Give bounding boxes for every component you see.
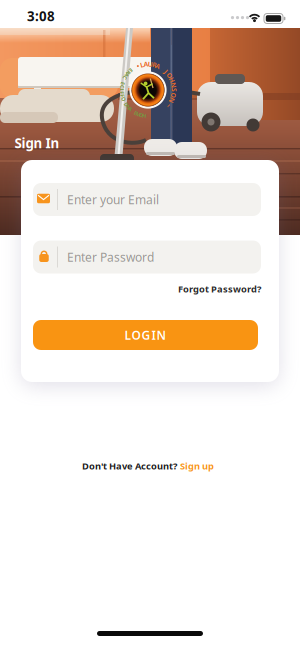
staticText: Enter your Email	[67, 191, 159, 207]
staticText: A	[144, 60, 149, 68]
staticText: Sign In	[14, 134, 59, 152]
staticText: ~	[166, 102, 170, 110]
staticText: M	[136, 111, 141, 118]
staticText: Don't Have Account?	[82, 460, 177, 472]
staticText: O	[171, 91, 176, 100]
staticText: U	[148, 60, 153, 69]
staticText: N	[171, 80, 176, 89]
button[interactable]: Forgot Password?	[33, 283, 261, 295]
staticText: E	[121, 80, 124, 87]
staticText: C	[124, 74, 127, 81]
staticText	[123, 77, 124, 84]
staticText: L	[140, 60, 144, 69]
staticText: N	[169, 96, 174, 105]
staticText: Enter Password	[67, 249, 154, 265]
button[interactable]: LOGIN	[33, 320, 258, 350]
staticText: D	[124, 101, 128, 108]
staticText: H	[169, 75, 174, 84]
staticText: C	[121, 83, 124, 90]
staticText: J	[165, 67, 167, 76]
staticText: R	[152, 60, 156, 69]
staticText: A	[125, 71, 129, 78]
staticText: F	[121, 89, 124, 96]
button[interactable]: Enter your Email	[33, 183, 261, 216]
staticText: I	[121, 86, 123, 93]
staticText: A	[128, 106, 132, 113]
staticText: F	[121, 92, 124, 99]
staticText: A	[156, 62, 161, 70]
staticText: N	[126, 103, 130, 110]
staticText: O	[167, 71, 172, 80]
staticText: 3:08	[27, 7, 55, 25]
staticText: LOGIN	[124, 327, 166, 343]
button[interactable]: Enter Password	[33, 240, 261, 273]
staticText: E	[134, 109, 137, 116]
staticText: R	[127, 69, 130, 76]
staticText: H	[142, 112, 146, 119]
staticText: Forgot Password?	[178, 283, 261, 295]
staticText: Sign up	[180, 460, 214, 472]
staticText: S	[172, 86, 176, 94]
staticText: E	[129, 67, 132, 74]
staticText: O	[139, 112, 143, 119]
button[interactable]: Sign up	[180, 460, 214, 472]
staticText	[124, 98, 125, 105]
staticText: O	[122, 95, 126, 102]
